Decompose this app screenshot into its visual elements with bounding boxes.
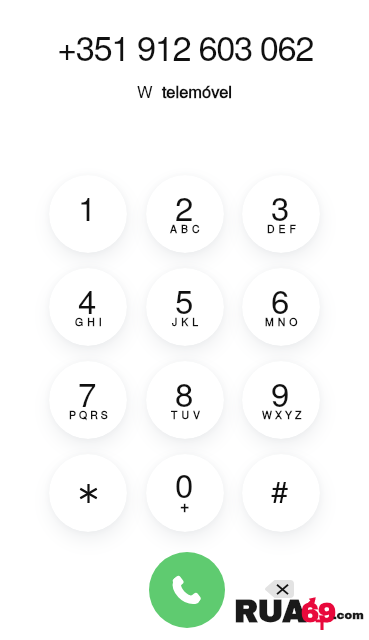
button[interactable]: Call <box>149 552 225 628</box>
staticText: 0 <box>175 460 194 507</box>
staticText: MNO <box>265 314 302 329</box>
staticText: # <box>271 467 289 511</box>
staticText: +351 912 603 062 <box>57 21 313 70</box>
button[interactable]: Dial 7 <box>49 361 127 439</box>
staticText: 5 <box>175 276 194 323</box>
button[interactable]: Dial star <box>49 454 127 532</box>
staticText: W <box>137 79 153 103</box>
button[interactable]: Dial 1 <box>49 175 127 253</box>
staticText: ABC <box>170 221 204 236</box>
staticText: DEF <box>267 221 300 236</box>
button[interactable]: Dial 6 <box>242 268 320 346</box>
staticText: 3 <box>271 183 290 230</box>
staticText: telemóvel <box>162 79 233 103</box>
button[interactable]: Dial # <box>242 454 320 532</box>
staticText: 9 <box>271 369 290 416</box>
staticText: 2 <box>175 183 194 230</box>
staticText: .com <box>333 609 364 622</box>
button[interactable]: Backspace <box>265 580 294 598</box>
staticText: 8 <box>175 369 194 416</box>
button[interactable]: Dial 2 <box>146 175 224 253</box>
staticText: TUV <box>171 407 204 422</box>
staticText: 6 <box>271 276 290 323</box>
button[interactable]: Dial 5 <box>146 268 224 346</box>
staticText: PQRS <box>69 407 111 422</box>
staticText: 4 <box>78 276 97 323</box>
staticText: JKL <box>172 314 203 329</box>
staticText: 69 <box>301 598 336 627</box>
button[interactable]: Dial 0 <box>146 454 224 532</box>
staticText: RUA <box>234 595 307 629</box>
staticText: + <box>180 494 190 517</box>
button[interactable]: Dial 3 <box>242 175 320 253</box>
staticText: GHI <box>75 314 106 329</box>
button[interactable]: Dial 4 <box>49 268 127 346</box>
staticText: WXYZ <box>262 407 305 422</box>
button[interactable]: Dial 8 <box>146 361 224 439</box>
button[interactable]: Dial 9 <box>242 361 320 439</box>
staticText: 1 <box>78 183 97 230</box>
staticText: 7 <box>78 369 97 416</box>
